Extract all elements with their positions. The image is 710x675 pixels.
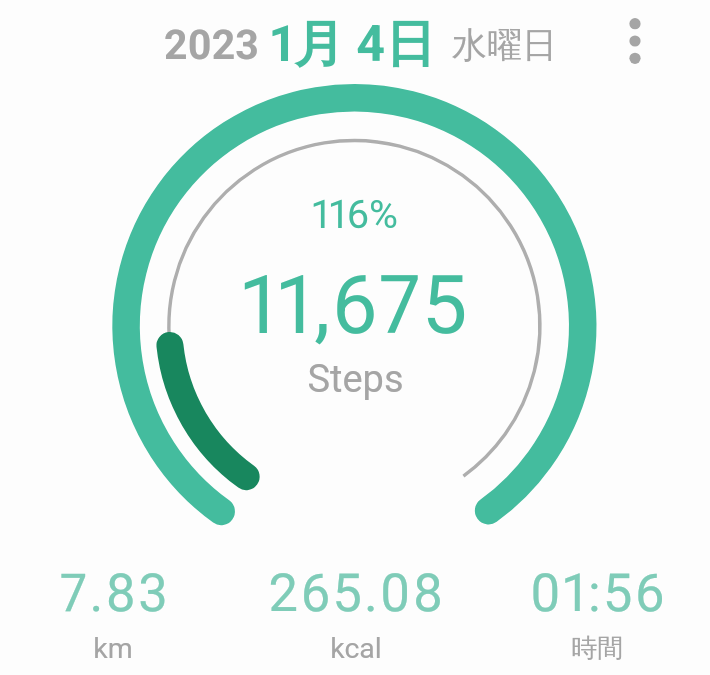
staticText: 01:56	[530, 562, 667, 624]
staticText: 時間	[571, 632, 623, 665]
staticText: 1月 4日	[270, 13, 436, 76]
staticText: 水曜日	[452, 23, 557, 67]
staticText: km	[93, 632, 133, 665]
staticText: 2023	[164, 21, 259, 69]
button[interactable]: 265.08	[237, 562, 477, 624]
button[interactable]: 01:56	[478, 562, 710, 624]
button[interactable]: 7.83	[0, 562, 235, 624]
staticText: 11,675	[241, 258, 469, 353]
button[interactable]: More options	[610, 16, 660, 66]
staticText: 7.83	[60, 562, 170, 624]
staticText: 265.08	[268, 562, 446, 624]
staticText: 116%	[312, 191, 398, 237]
staticText: Steps	[307, 357, 404, 402]
staticText: kcal	[330, 632, 382, 665]
